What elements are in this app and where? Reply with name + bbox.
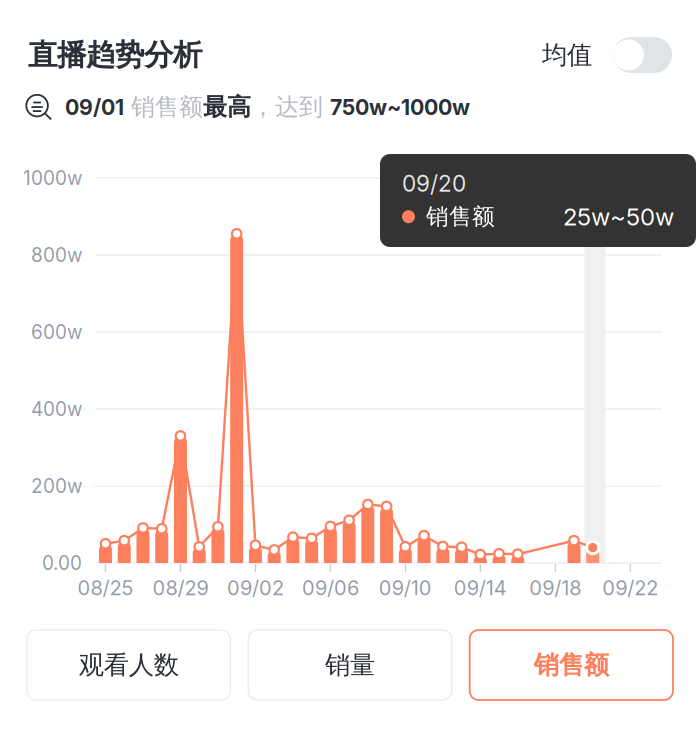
staticText: 09/22 [602, 576, 658, 600]
staticText: 400w [31, 397, 82, 420]
button[interactable]: 均值 [613, 37, 672, 73]
staticText: 09/01 [65, 94, 124, 120]
staticText: 600w [31, 320, 82, 343]
staticText: 均值 [542, 39, 592, 71]
staticText: 销售额 [534, 649, 609, 681]
staticText: 09/10 [379, 576, 432, 600]
staticText: 800w [31, 243, 82, 266]
staticText: 08/25 [77, 576, 133, 600]
staticText: 08/29 [152, 576, 208, 600]
staticText: 200w [31, 474, 82, 497]
staticText: 09/14 [454, 576, 507, 600]
staticText: 09/02 [227, 576, 284, 600]
button[interactable]: 观看人数 [27, 630, 230, 700]
button[interactable]: 销售额 [470, 630, 673, 700]
staticText: 09/18 [529, 576, 581, 600]
staticText: 1000w [23, 166, 82, 189]
staticText: 0.00 [42, 551, 82, 574]
staticText: 09/06 [302, 576, 359, 600]
staticText: 达到 [275, 92, 323, 122]
staticText: 观看人数 [79, 649, 179, 681]
button[interactable]: 销量 [248, 630, 452, 700]
staticText: 750w~1000w [330, 94, 470, 120]
staticText: 25w~50w [563, 202, 674, 231]
staticText: 09/20 [402, 170, 466, 197]
staticText: 销售额 [131, 92, 203, 122]
staticText: 销售额 [426, 202, 495, 231]
staticText: ， [251, 92, 275, 122]
staticText: 最高 [203, 92, 251, 122]
staticText: 销量 [325, 649, 375, 681]
staticText: 直播趋势分析 [28, 36, 202, 73]
